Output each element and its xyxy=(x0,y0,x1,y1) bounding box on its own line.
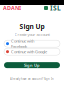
staticText: ISL xyxy=(50,4,61,12)
button[interactable]: Sign Up xyxy=(4,62,60,68)
staticText: Continue with Google xyxy=(11,49,47,54)
button[interactable]: Continue with Google xyxy=(4,48,60,55)
staticText: Sign Up xyxy=(19,22,44,31)
staticText: ADANI xyxy=(3,4,21,12)
staticText: Sign Up xyxy=(24,62,40,68)
staticText: Continue with Facebook xyxy=(11,38,34,49)
staticText: Create your account xyxy=(14,32,49,37)
button[interactable]: Continue with Facebook xyxy=(4,40,60,47)
staticText: Already have an account? Sign In xyxy=(10,77,54,81)
